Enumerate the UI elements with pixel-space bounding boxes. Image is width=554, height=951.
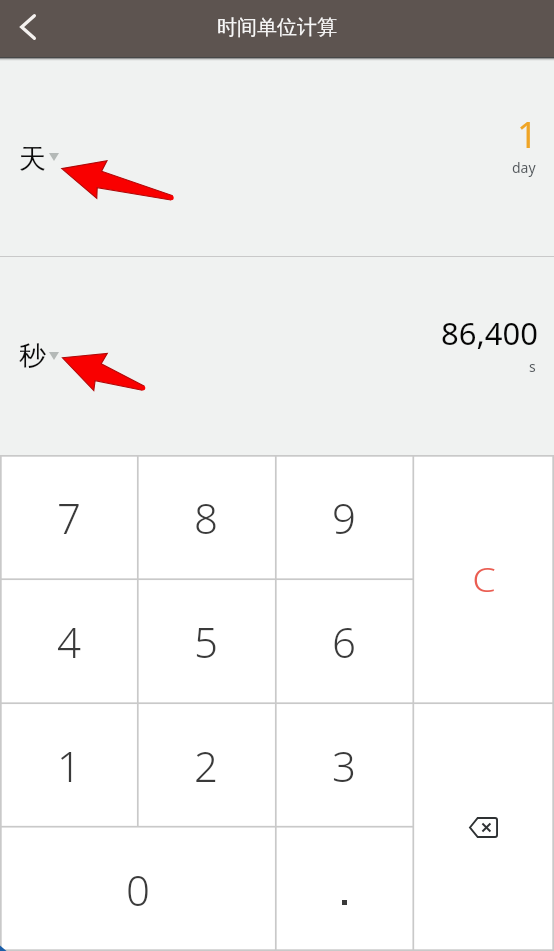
button[interactable]: 3 — [275, 703, 413, 827]
button[interactable]: 6 — [275, 579, 413, 703]
staticText: 2 — [194, 737, 218, 794]
staticText: 3 — [332, 737, 356, 794]
button[interactable]: 天 — [0, 57, 554, 256]
staticText: 天 — [19, 142, 46, 176]
button[interactable]: Back — [0, 0, 56, 57]
button[interactable]: 5 — [137, 579, 275, 703]
button[interactable]: 1 — [0, 703, 137, 827]
staticText: 4 — [57, 613, 81, 670]
staticText: C — [472, 558, 496, 602]
button[interactable]: Decimal point — [275, 827, 413, 951]
button[interactable]: 9 — [275, 455, 413, 579]
staticText: s — [529, 357, 536, 376]
staticText: 时间单位计算 — [217, 15, 337, 40]
button[interactable]: C — [413, 455, 554, 703]
button[interactable]: 秒 — [0, 257, 554, 455]
staticText: 9 — [332, 489, 356, 546]
button[interactable]: Backspace — [413, 703, 554, 951]
staticText: 6 — [332, 613, 356, 670]
button[interactable]: 4 — [0, 579, 137, 703]
staticText: 5 — [194, 613, 218, 670]
button[interactable]: 7 — [0, 455, 137, 579]
staticText: 86,400 — [441, 312, 538, 354]
button[interactable]: 8 — [137, 455, 275, 579]
staticText: 秒 — [19, 339, 46, 373]
staticText: 8 — [194, 489, 218, 546]
staticText: 0 — [126, 861, 150, 918]
staticText: 1 — [57, 737, 81, 794]
staticText: day — [512, 158, 536, 177]
button[interactable]: 2 — [137, 703, 275, 827]
staticText: 1 — [517, 110, 538, 159]
button[interactable]: 0 — [0, 827, 275, 951]
staticText: 7 — [57, 489, 81, 546]
